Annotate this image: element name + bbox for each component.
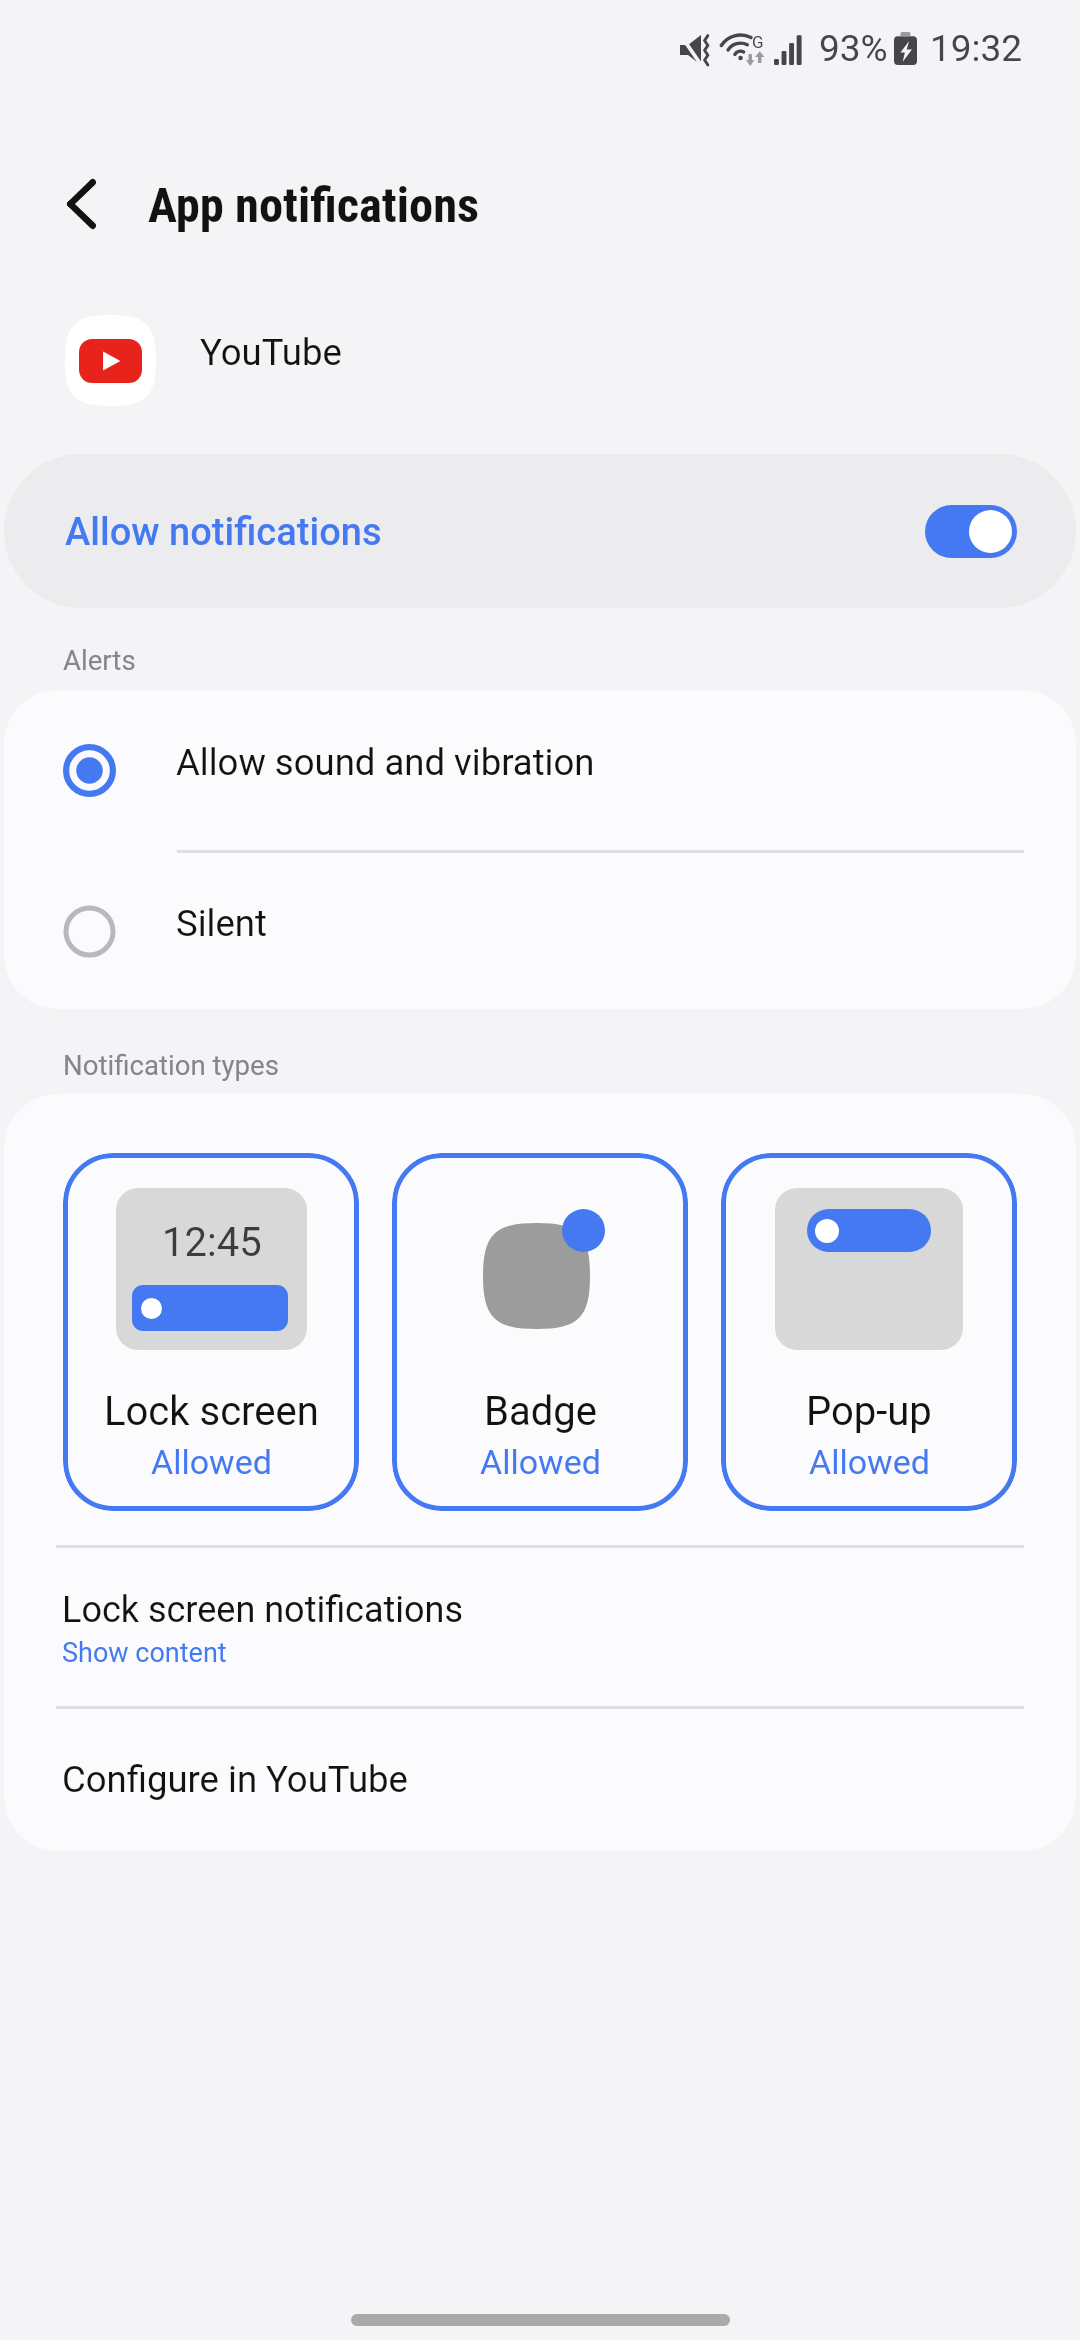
staticText: 12:45 <box>162 1219 262 1266</box>
staticText: Badge <box>484 1388 597 1435</box>
button[interactable]: Allow sound and vibration <box>4 690 1076 850</box>
button[interactable]: Pop-up <box>721 1153 1017 1511</box>
staticText: Silent <box>176 902 267 945</box>
staticText: Lock screen <box>104 1388 319 1435</box>
button[interactable]: Allow notifications <box>4 454 1076 608</box>
staticText: Show content <box>62 1637 227 1669</box>
staticText: 19:32 <box>930 27 1023 70</box>
staticText: YouTube <box>200 331 342 374</box>
staticText: Allowed <box>809 1442 930 1482</box>
staticText: 93% <box>819 27 888 70</box>
staticText: Allow notifications <box>65 510 382 555</box>
staticText: Allowed <box>151 1442 272 1482</box>
staticText: Pop-up <box>806 1388 932 1435</box>
button[interactable]: Lock screen notifications <box>4 1589 1076 1669</box>
staticText: Notification types <box>63 1049 279 1081</box>
button[interactable]: Configure in YouTube <box>4 1709 1076 1851</box>
button[interactable]: Badge <box>392 1153 688 1511</box>
staticText: G <box>752 32 764 52</box>
button[interactable]: 12:45 <box>63 1153 359 1511</box>
button[interactable]: Back <box>36 160 126 248</box>
staticText: Allow sound and vibration <box>176 741 595 784</box>
button[interactable]: Silent <box>4 853 1076 1009</box>
staticText: Allowed <box>480 1442 601 1482</box>
staticText: Alerts <box>63 644 136 676</box>
staticText: App notifications <box>148 177 480 234</box>
staticText: Lock screen notifications <box>62 1589 464 1631</box>
staticText: Configure in YouTube <box>62 1758 408 1801</box>
